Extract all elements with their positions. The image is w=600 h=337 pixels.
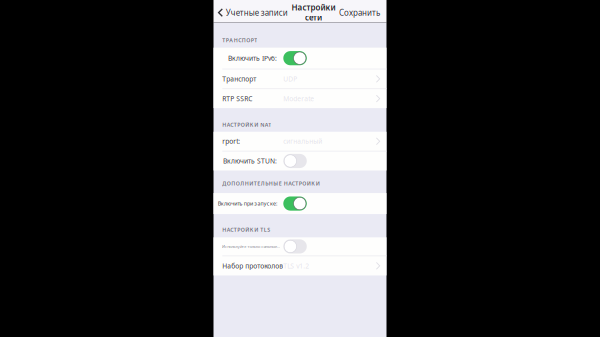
button[interactable]: Набор протоколов	[213, 256, 386, 275]
button[interactable]: Включить STUN:	[213, 151, 386, 170]
staticText: rport:	[222, 137, 240, 146]
button[interactable]: Сохранить	[339, 3, 386, 22]
staticText: Набор протоколов	[222, 261, 283, 270]
staticText: НАСТРОЙКИ NAT	[222, 121, 271, 128]
staticText: ДОПОЛНИТЕЛЬНЫЕ НАСТРОЙКИ	[222, 180, 320, 187]
button[interactable]: RTP SSRC	[213, 89, 386, 108]
staticText: НАСТРОЙКИ TLS	[222, 226, 270, 233]
staticText: TLS v1.2	[283, 261, 309, 270]
staticText: Сохранить	[339, 7, 380, 18]
button[interactable]: Используйте только сильные…	[213, 237, 386, 255]
staticText: RTP SSRC	[222, 94, 252, 103]
staticText: Moderate	[283, 94, 314, 103]
staticText: Настройки	[291, 2, 335, 13]
staticText: Учетные записи	[226, 7, 288, 18]
staticText: Включить IPv6:	[228, 54, 277, 63]
staticText: Транспорт	[222, 74, 256, 83]
button[interactable]: rport:	[213, 132, 386, 151]
button[interactable]: Включить при запуске:	[213, 193, 386, 214]
staticText: сети	[305, 12, 322, 23]
button[interactable]: Транспорт	[213, 69, 386, 88]
button[interactable]: Включить IPv6:	[213, 48, 386, 69]
staticText: UDP	[283, 74, 297, 83]
staticText: Используйте только сильные…	[222, 244, 280, 249]
staticText: сигнальный	[283, 137, 322, 146]
staticText: Включить при запуске:	[218, 200, 277, 207]
button[interactable]: Back to Учетные записи	[213, 3, 288, 22]
staticText: ТРАНСПОРТ	[222, 37, 257, 44]
staticText: Включить STUN:	[223, 156, 277, 165]
